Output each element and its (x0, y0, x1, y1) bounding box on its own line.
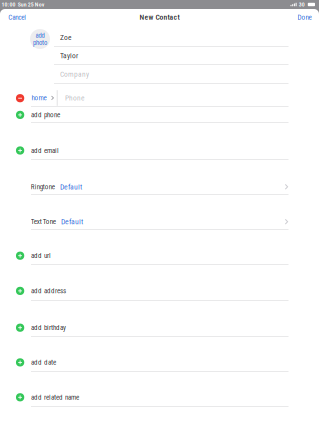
staticText: Ringtone (31, 183, 55, 191)
staticText: New Contact (139, 13, 179, 22)
button[interactable]: add url (15, 248, 288, 263)
staticText: Cancel (8, 13, 26, 21)
staticText: Company (60, 70, 89, 78)
button[interactable]: add phone (15, 107, 288, 122)
staticText: Zoe (60, 33, 72, 42)
staticText: add phone (31, 111, 60, 119)
button[interactable]: Zoe (60, 29, 288, 45)
staticText: Default (61, 217, 83, 226)
staticText: add birthday (31, 324, 66, 332)
staticText: Taylor (60, 51, 78, 60)
staticText: add related name (31, 393, 79, 401)
staticText: add (35, 31, 44, 39)
staticText: photo (33, 39, 47, 46)
staticText: add email (31, 146, 59, 155)
staticText: 30 (299, 1, 305, 8)
staticText: add date (31, 358, 56, 367)
staticText: Default (60, 182, 82, 191)
button[interactable]: add related name (15, 390, 288, 405)
button[interactable]: Remove phone number (16, 94, 24, 102)
button[interactable]: Text Tone (31, 214, 288, 229)
button[interactable]: add birthday (15, 320, 288, 335)
button[interactable]: add date (15, 355, 288, 370)
button[interactable]: Ringtone (31, 179, 288, 194)
staticText: add address (31, 287, 66, 295)
staticText: Text Tone (31, 218, 56, 226)
button[interactable]: add email (15, 143, 288, 158)
button[interactable]: Company (60, 66, 288, 82)
button[interactable]: add address (15, 283, 288, 298)
button[interactable]: home (31, 91, 54, 104)
button[interactable]: Cancel (8, 11, 32, 24)
button[interactable]: Add photo (30, 29, 50, 49)
staticText: add url (31, 252, 51, 260)
staticText: Done (298, 13, 312, 21)
button[interactable]: Done (290, 11, 312, 24)
staticText: Sun 25 Nov (18, 1, 45, 8)
staticText: Phone (65, 93, 85, 102)
staticText: home (31, 94, 46, 102)
button[interactable]: Taylor (60, 48, 288, 64)
staticText: 10:00 (2, 1, 16, 8)
